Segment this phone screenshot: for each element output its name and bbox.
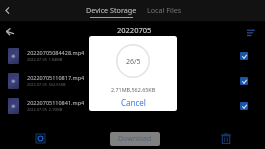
staticText: 2022-07-05 2.10MB — [27, 107, 63, 112]
staticText: 2022-07-05 562.65KB — [27, 82, 66, 87]
staticText: Device Storage — [86, 5, 137, 15]
button[interactable]: Select all — [34, 132, 47, 145]
staticText: 20220705084428.mp4 — [27, 49, 85, 56]
button[interactable]: Device Storage — [86, 0, 137, 18]
button[interactable]: Back — [0, 3, 15, 18]
button[interactable]: Cancel — [89, 95, 177, 109]
button[interactable]: Selected — [236, 73, 252, 89]
staticText: 2.71MB,562.65KB — [111, 86, 156, 93]
button[interactable]: 20220705084428.mp4 — [0, 43, 265, 68]
button[interactable]: Sort — [244, 26, 257, 39]
staticText: 26/5 — [126, 57, 141, 67]
button[interactable]: Selected — [236, 48, 252, 64]
button[interactable]: Delete — [219, 132, 232, 145]
staticText: Cancel — [121, 97, 146, 108]
button[interactable]: Download — [110, 132, 160, 146]
staticText: Local Files — [147, 5, 182, 15]
button[interactable]: Back to folders — [2, 25, 16, 39]
button[interactable]: 20220705110841.mp4 — [0, 93, 265, 118]
staticText: 20220705 — [117, 25, 152, 35]
button[interactable]: Local Files — [147, 0, 182, 17]
button[interactable]: Selected — [236, 98, 252, 114]
staticText: 2022-07-05 1.84MB — [27, 57, 63, 62]
button[interactable]: 20220705110817.mp4 — [0, 68, 265, 93]
staticText: 20220705110817.mp4 — [27, 74, 85, 81]
staticText: Download — [118, 134, 152, 144]
staticText: 20220705110841.mp4 — [27, 99, 85, 106]
